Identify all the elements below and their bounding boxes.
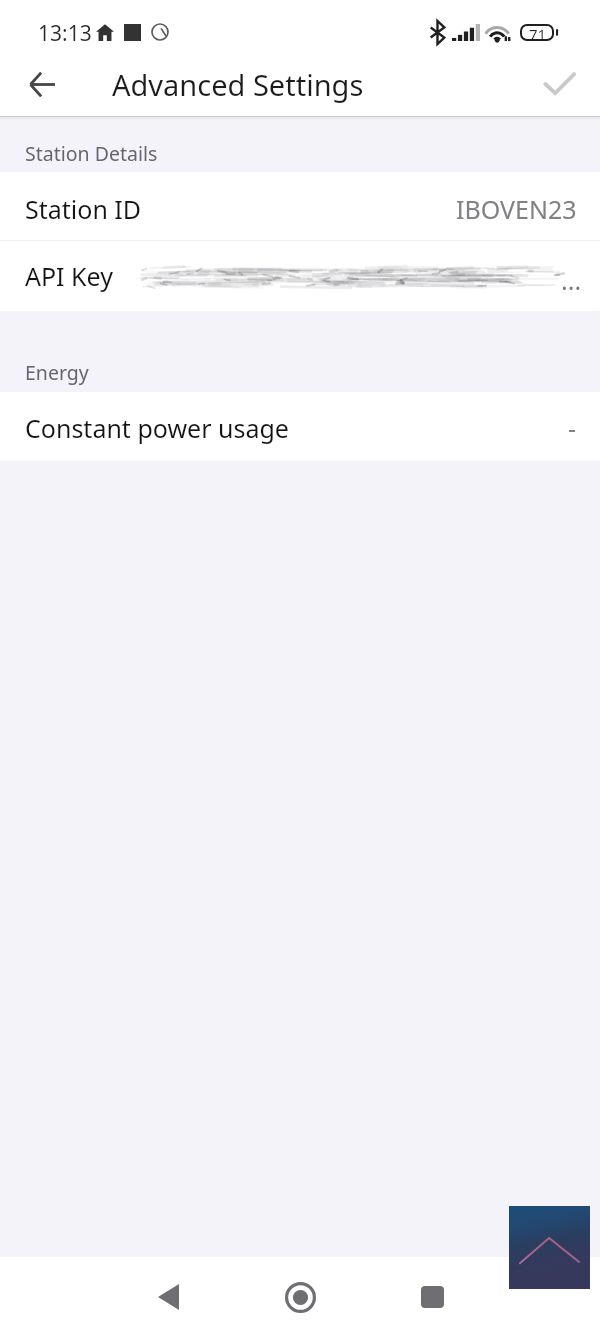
button[interactable]: API Key [0, 241, 600, 311]
staticText: Energy [25, 359, 89, 386]
button[interactable]: Back [130, 1259, 206, 1333]
staticText: IBOVEN23 [456, 192, 577, 226]
button[interactable]: Navigate up [12, 54, 72, 114]
staticText: Constant power usage [25, 411, 289, 445]
staticText: Station ID [25, 192, 142, 226]
staticText: API Key [25, 259, 113, 293]
staticText: ... [561, 263, 582, 297]
button[interactable]: Station ID [0, 172, 600, 240]
button[interactable]: Save [529, 54, 589, 114]
staticText: Advanced Settings [112, 65, 364, 104]
staticText: - [568, 411, 577, 445]
staticText: 13:13 [38, 19, 92, 48]
button[interactable]: Constant power usage [0, 392, 600, 461]
button[interactable]: Screen recorder overlay [509, 1206, 590, 1289]
button[interactable]: Home [262, 1259, 338, 1333]
staticText: Station Details [25, 140, 158, 167]
button[interactable]: Recent apps [394, 1259, 470, 1333]
staticText: 71 [529, 24, 547, 41]
